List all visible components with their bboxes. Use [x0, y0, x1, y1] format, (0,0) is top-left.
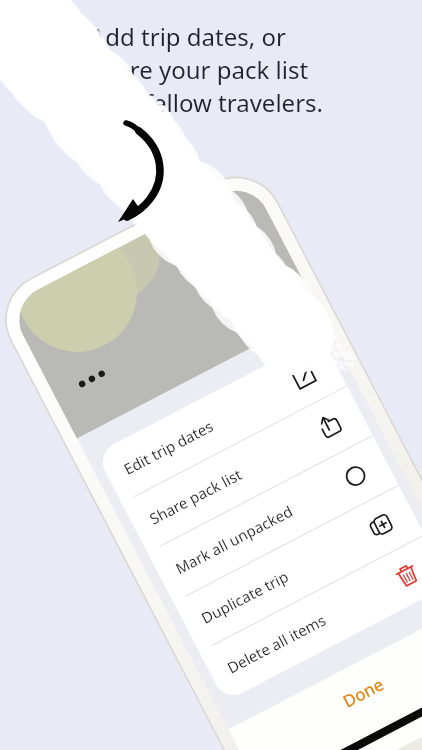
button[interactable]: Add trip dates, or share your pack list … [0, 0, 422, 750]
